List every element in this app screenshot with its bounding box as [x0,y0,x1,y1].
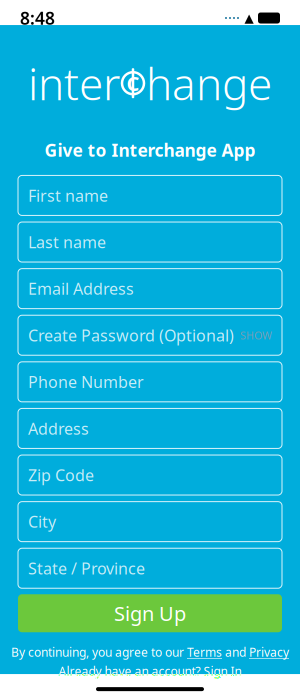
staticText: Create Password (Optional) [28,325,234,346]
button[interactable]: Sign In [203,663,241,679]
button[interactable]: Create Password (Optional) [18,315,282,355]
staticText: 8:48 [20,6,55,29]
staticText: Give to Interchange App [44,138,255,161]
staticText: inter [28,54,120,112]
staticText: State / Province [28,558,145,579]
staticText: Address [28,418,89,439]
button[interactable]: State / Province [18,548,282,588]
staticText: and [222,644,249,660]
staticText: City [28,511,56,532]
button[interactable]: Sign Up [18,594,282,632]
button[interactable]: Last name [18,222,282,262]
button[interactable]: Phone Number [18,362,282,402]
staticText: C [126,70,139,96]
button[interactable]: Email Address [18,269,282,309]
staticText: Privacy [249,644,289,660]
staticText: Zip Code [28,464,94,486]
button[interactable]: Terms [187,644,222,660]
staticText: Phone Number [28,371,144,392]
button[interactable]: Address [18,408,282,448]
button[interactable]: First name [18,175,282,215]
staticText: Sign Up [114,600,186,627]
staticText: Email Address [28,278,134,299]
staticText: By continuing, you agree to our [11,644,187,660]
button[interactable]: Privacy [249,644,289,660]
staticText: SHOW [240,328,272,342]
staticText: Last name [28,231,106,253]
button[interactable]: City [18,502,282,542]
button[interactable]: Zip Code [18,455,282,495]
staticText: Already have an account? [58,663,203,679]
staticText: First name [28,185,108,206]
staticText: hange [146,54,272,112]
staticText: Sign In [203,663,241,679]
staticText: Terms [187,644,222,660]
